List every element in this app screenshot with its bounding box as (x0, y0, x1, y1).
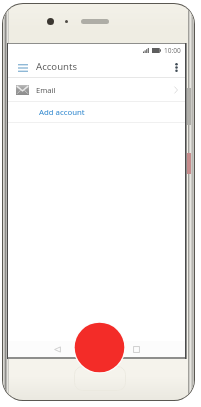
button[interactable]: Home key (74, 366, 126, 391)
button[interactable]: Back (49, 341, 65, 357)
button[interactable]: Email (8, 78, 185, 102)
button[interactable]: Add account (8, 101, 185, 123)
staticText: 10:00 (164, 46, 181, 55)
button[interactable]: Recent apps (128, 341, 144, 357)
staticText: Accounts (36, 60, 78, 73)
staticText: Email (36, 85, 56, 95)
button[interactable]: Open navigation drawer (15, 60, 31, 75)
button[interactable]: More options (168, 59, 184, 75)
staticText: Add account (39, 107, 85, 118)
